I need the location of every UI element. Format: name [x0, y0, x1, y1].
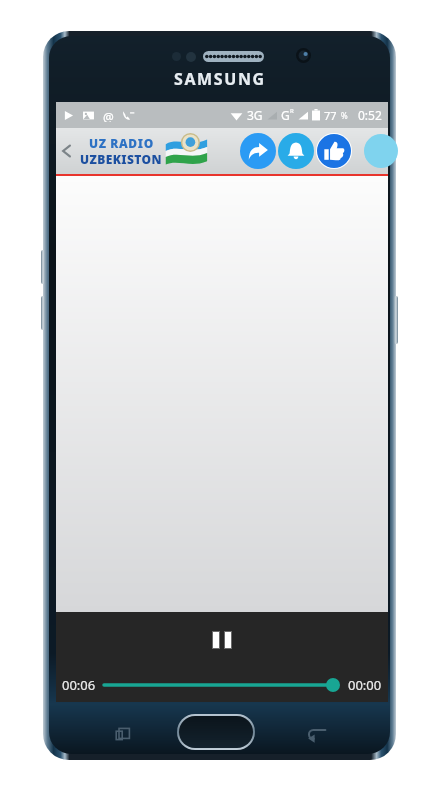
staticText: 0:52 — [358, 107, 382, 123]
button[interactable]: Recents — [113, 724, 133, 744]
button[interactable]: Back — [307, 724, 327, 744]
staticText: @ — [103, 109, 114, 122]
staticText: R — [290, 107, 294, 115]
staticText: UZ RADIO — [89, 135, 154, 151]
button[interactable]: More — [364, 134, 398, 168]
staticText: 00:00 — [348, 676, 382, 694]
staticText: 3G — [247, 107, 263, 123]
button[interactable] — [104, 675, 340, 695]
button[interactable]: Back — [56, 128, 78, 174]
button[interactable]: Share — [240, 133, 276, 169]
button[interactable]: Pause — [205, 627, 239, 653]
button[interactable]: Notifications — [278, 133, 314, 169]
button[interactable]: Home — [179, 716, 253, 748]
staticText: 00:06 — [62, 676, 96, 694]
staticText: % — [341, 110, 348, 121]
staticText: UZBEKISTON — [80, 151, 162, 167]
button[interactable]: Like — [317, 134, 351, 168]
staticText: SAMSUNG — [174, 68, 266, 90]
staticText: G — [281, 107, 290, 123]
staticText: 77 — [324, 108, 337, 123]
